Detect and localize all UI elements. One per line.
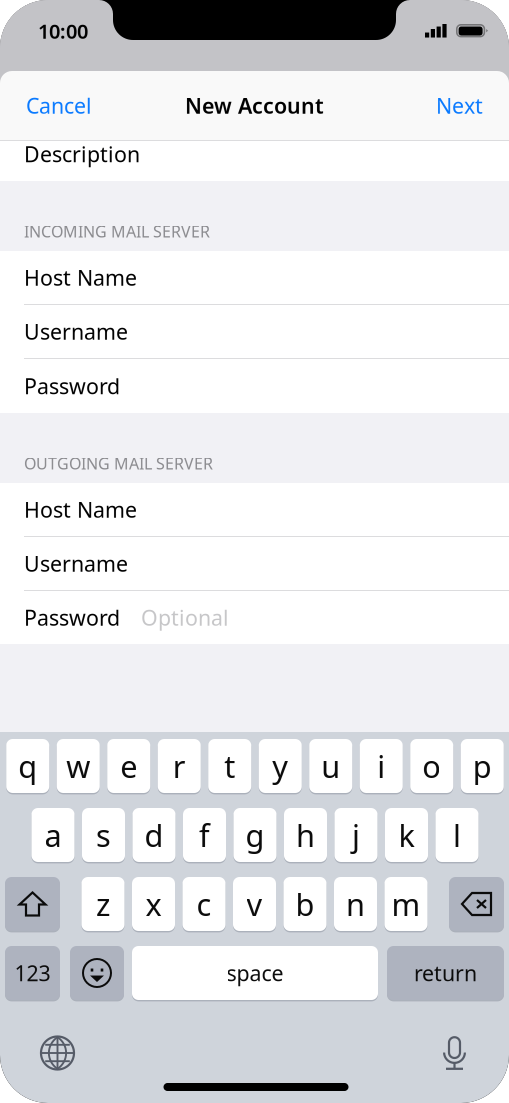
button[interactable]: Change keyboard xyxy=(34,1031,80,1075)
button[interactable]: Emoji xyxy=(70,946,124,1000)
button[interactable]: Cancel xyxy=(26,91,92,120)
staticText: o xyxy=(422,746,441,786)
staticText: h xyxy=(296,815,315,855)
staticText: t xyxy=(224,746,235,786)
staticText: INCOMING MAIL SERVER xyxy=(24,221,210,242)
staticText: e xyxy=(120,746,137,786)
staticText: z xyxy=(96,884,110,924)
button[interactable]: Host Name xyxy=(0,483,509,536)
button[interactable]: Password xyxy=(0,359,509,413)
staticText: s xyxy=(96,815,111,855)
button[interactable]: a xyxy=(31,808,74,862)
button[interactable]: Next xyxy=(436,91,483,120)
button[interactable]: w xyxy=(57,739,100,793)
button[interactable]: e xyxy=(107,739,150,793)
staticText: Cancel xyxy=(26,91,92,120)
staticText: a xyxy=(44,815,61,855)
button[interactable]: Description xyxy=(0,141,509,181)
staticText: Host Name xyxy=(24,495,137,524)
button[interactable]: x xyxy=(132,877,175,931)
button[interactable]: z xyxy=(81,877,124,931)
button[interactable]: Password xyxy=(0,591,509,644)
staticText: g xyxy=(245,815,264,855)
staticText: i xyxy=(377,746,385,786)
staticText: v xyxy=(246,884,262,924)
staticText: Password xyxy=(24,372,120,400)
button[interactable]: i xyxy=(360,739,403,793)
staticText: Password xyxy=(24,603,120,632)
staticText: x xyxy=(145,884,161,924)
button[interactable]: t xyxy=(208,739,251,793)
button[interactable]: c xyxy=(182,877,225,931)
button[interactable]: q xyxy=(6,739,49,793)
staticText: r xyxy=(173,746,186,786)
staticText: c xyxy=(196,884,211,924)
button[interactable]: Delete xyxy=(449,877,504,931)
staticText: w xyxy=(66,746,90,786)
staticText: m xyxy=(391,884,420,924)
button[interactable]: j xyxy=(334,808,377,862)
staticText: return xyxy=(414,959,477,987)
staticText: l xyxy=(453,815,461,855)
button[interactable]: f xyxy=(183,808,226,862)
staticText: space xyxy=(226,959,283,987)
staticText: Username xyxy=(24,549,128,578)
button[interactable]: r xyxy=(158,739,201,793)
staticText: p xyxy=(473,746,492,786)
staticText: j xyxy=(352,815,360,855)
button[interactable]: n xyxy=(334,877,377,931)
staticText: Next xyxy=(436,91,483,120)
button[interactable]: Username xyxy=(0,305,509,358)
button[interactable]: p xyxy=(461,739,504,793)
button[interactable]: h xyxy=(284,808,327,862)
button[interactable]: Shift xyxy=(5,877,60,931)
button[interactable]: v xyxy=(233,877,276,931)
staticText: y xyxy=(272,746,288,786)
button[interactable]: l xyxy=(435,808,478,862)
staticText: New Account xyxy=(185,91,324,120)
button[interactable]: s xyxy=(82,808,125,862)
staticText: n xyxy=(346,884,365,924)
staticText: u xyxy=(321,746,340,786)
button[interactable]: Dictate xyxy=(431,1031,477,1075)
staticText: Description xyxy=(24,140,140,168)
staticText: d xyxy=(144,815,163,855)
button[interactable]: space xyxy=(132,946,378,1000)
button[interactable]: o xyxy=(410,739,453,793)
button[interactable]: y xyxy=(259,739,302,793)
staticText: Optional xyxy=(141,603,229,632)
button[interactable]: k xyxy=(385,808,428,862)
button[interactable]: Username xyxy=(0,537,509,590)
staticText: f xyxy=(199,815,210,855)
button[interactable]: return xyxy=(387,946,504,1000)
staticText: 123 xyxy=(14,959,50,987)
staticText: q xyxy=(18,746,37,786)
button[interactable]: m xyxy=(384,877,427,931)
staticText: Username xyxy=(24,317,128,346)
staticText: OUTGOING MAIL SERVER xyxy=(24,453,213,474)
staticText: Host Name xyxy=(24,263,137,292)
button[interactable]: Host Name xyxy=(0,251,509,304)
button[interactable]: b xyxy=(283,877,326,931)
button[interactable]: 123 xyxy=(5,946,60,1000)
button[interactable]: u xyxy=(309,739,352,793)
staticText: k xyxy=(398,815,414,855)
staticText: b xyxy=(295,884,314,924)
staticText: 10:00 xyxy=(38,18,88,44)
button[interactable]: g xyxy=(233,808,276,862)
button[interactable]: d xyxy=(132,808,175,862)
